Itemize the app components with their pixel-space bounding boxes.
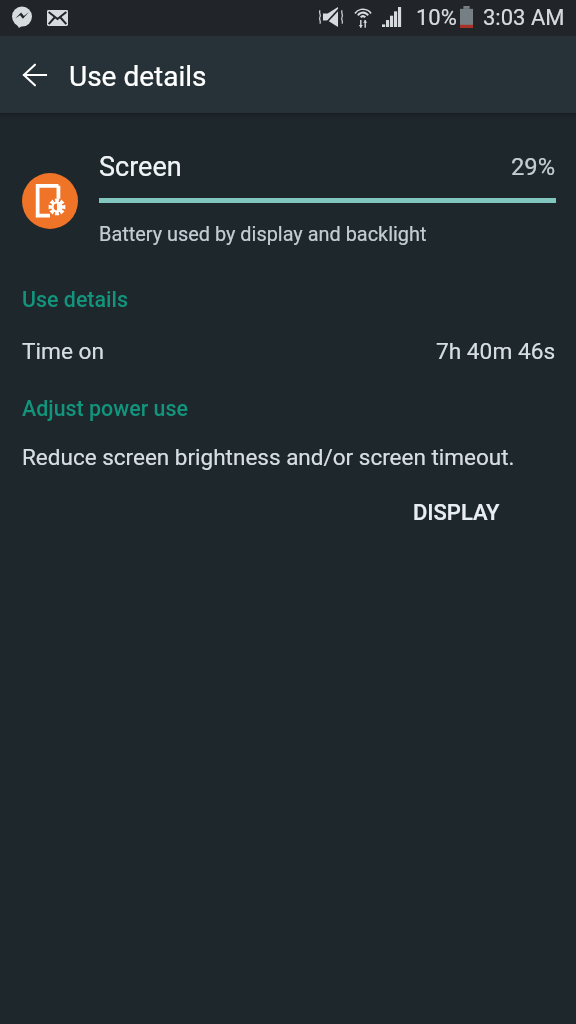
staticText: Use details xyxy=(69,60,207,93)
staticText: Reduce screen brightness and/or screen t… xyxy=(22,444,515,470)
staticText: Battery used by display and backlight xyxy=(99,223,427,246)
button[interactable]: Screen xyxy=(0,113,576,258)
button[interactable]: Navigate up xyxy=(10,51,58,99)
button[interactable]: Time on xyxy=(0,320,576,383)
staticText: 29% xyxy=(511,153,556,181)
staticText: 7h 40m 46s xyxy=(436,338,556,365)
button[interactable]: DISPLAY xyxy=(403,494,510,532)
staticText: 10% xyxy=(416,5,457,31)
staticText: Time on xyxy=(22,338,105,365)
staticText: Use details xyxy=(22,287,129,312)
staticText: 3:03 AM xyxy=(483,5,565,31)
staticText: Adjust power use xyxy=(22,396,188,421)
staticText: DISPLAY xyxy=(413,500,500,526)
staticText: Screen xyxy=(99,151,182,183)
